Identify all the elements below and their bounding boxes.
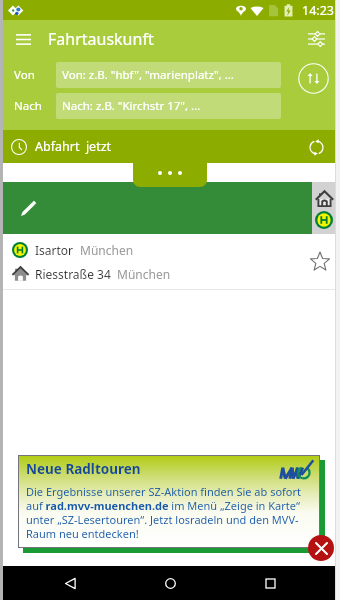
button[interactable]: Isartor <box>3 238 336 262</box>
staticText: 14:23 <box>302 2 334 19</box>
button[interactable]: Home <box>155 568 185 598</box>
button[interactable]: Von: z.B. "hbf", "marienplatz", ... <box>56 62 281 88</box>
button[interactable]: Abfahrt jetzt <box>3 130 336 163</box>
button[interactable]: Riesstraße 34 <box>3 262 336 285</box>
button[interactable]: Home <box>314 188 334 208</box>
button[interactable]: Stops <box>314 210 334 230</box>
staticText: Neue Radltouren <box>26 460 141 478</box>
staticText: Die Ergebnisse unserer SZ-Aktion finden … <box>26 484 302 541</box>
button[interactable]: Open navigation menu <box>9 25 37 53</box>
button[interactable]: Edit route <box>15 195 41 221</box>
staticText: Isartor <box>35 242 74 258</box>
staticText: Von: z.B. "hbf", "marienplatz", ... <box>62 67 234 83</box>
button[interactable]: Recent apps <box>255 568 285 598</box>
button[interactable]: Add to favourites <box>306 248 334 276</box>
staticText: Nach: z.B. "Kirchstr 17", ... <box>62 98 201 114</box>
staticText: Nach <box>14 98 42 114</box>
button[interactable]: Nach: z.B. "Kirchstr 17", ... <box>56 93 281 119</box>
button[interactable]: Settings <box>302 25 330 53</box>
button[interactable]: Back <box>55 568 85 598</box>
staticText: Riesstraße 34 <box>35 266 111 282</box>
staticText: München <box>117 266 171 282</box>
button[interactable]: Close <box>308 535 334 561</box>
staticText: Fahrtauskunft <box>48 28 154 50</box>
staticText: Von <box>14 67 35 83</box>
staticText: Abfahrt jetzt <box>35 138 112 155</box>
button[interactable]: Swap origin and destination <box>296 61 330 95</box>
button[interactable]: Expand panel <box>133 163 207 187</box>
button[interactable]: Neue Radltouren <box>19 456 319 547</box>
button[interactable]: Refresh <box>302 133 330 161</box>
staticText: München <box>80 242 134 258</box>
